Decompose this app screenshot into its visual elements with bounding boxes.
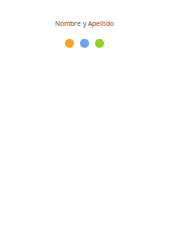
button[interactable]: Estado azul [80, 39, 89, 48]
staticText: Nombre y Apellido [55, 19, 114, 28]
button[interactable]: Estado verde [95, 39, 104, 48]
button[interactable]: Estado naranja [65, 39, 74, 48]
